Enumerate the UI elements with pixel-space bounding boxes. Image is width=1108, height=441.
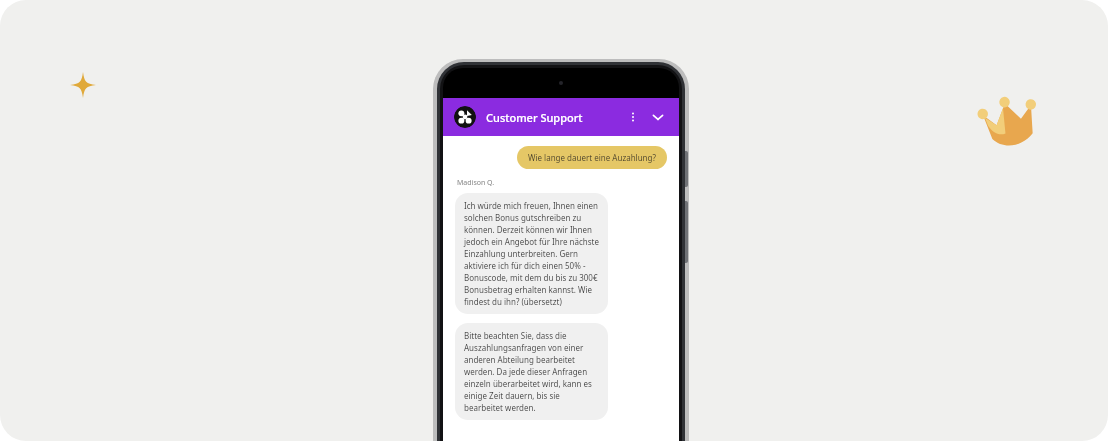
staticText: Wie lange dauert eine Auzahlung? (528, 152, 656, 163)
staticText: Madison Q. (457, 178, 495, 188)
button[interactable]: Bitte beachten Sie, dass die Auszahlungs… (455, 323, 608, 420)
button[interactable]: Collapse chat (648, 107, 668, 127)
staticText: Ich würde mich freuen, Ihnen einen solch… (464, 200, 599, 307)
button[interactable]: Agent avatar (454, 106, 476, 128)
staticText: Bitte beachten Sie, dass die Auszahlungs… (464, 330, 599, 413)
button[interactable]: Wie lange dauert eine Auzahlung? (517, 146, 667, 169)
staticText: Customer Support (486, 110, 624, 125)
button[interactable]: More options (624, 108, 642, 126)
button[interactable]: Ich würde mich freuen, Ihnen einen solch… (455, 193, 608, 314)
